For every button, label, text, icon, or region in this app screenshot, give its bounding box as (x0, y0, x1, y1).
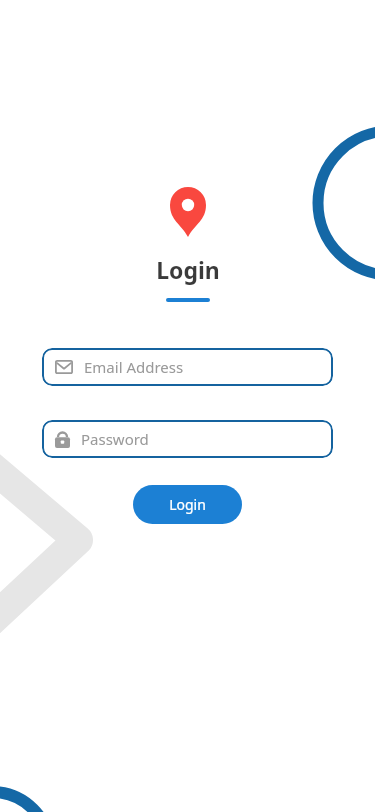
button[interactable]: Login (133, 485, 242, 524)
staticText: Password (81, 429, 149, 449)
staticText: Login (156, 254, 220, 285)
staticText: Email Address (84, 357, 184, 377)
other: Email (55, 360, 73, 374)
button[interactable]: Email (42, 348, 333, 386)
button[interactable]: Password (42, 420, 333, 458)
other: Password (55, 430, 70, 448)
staticText: Login (169, 495, 206, 514)
